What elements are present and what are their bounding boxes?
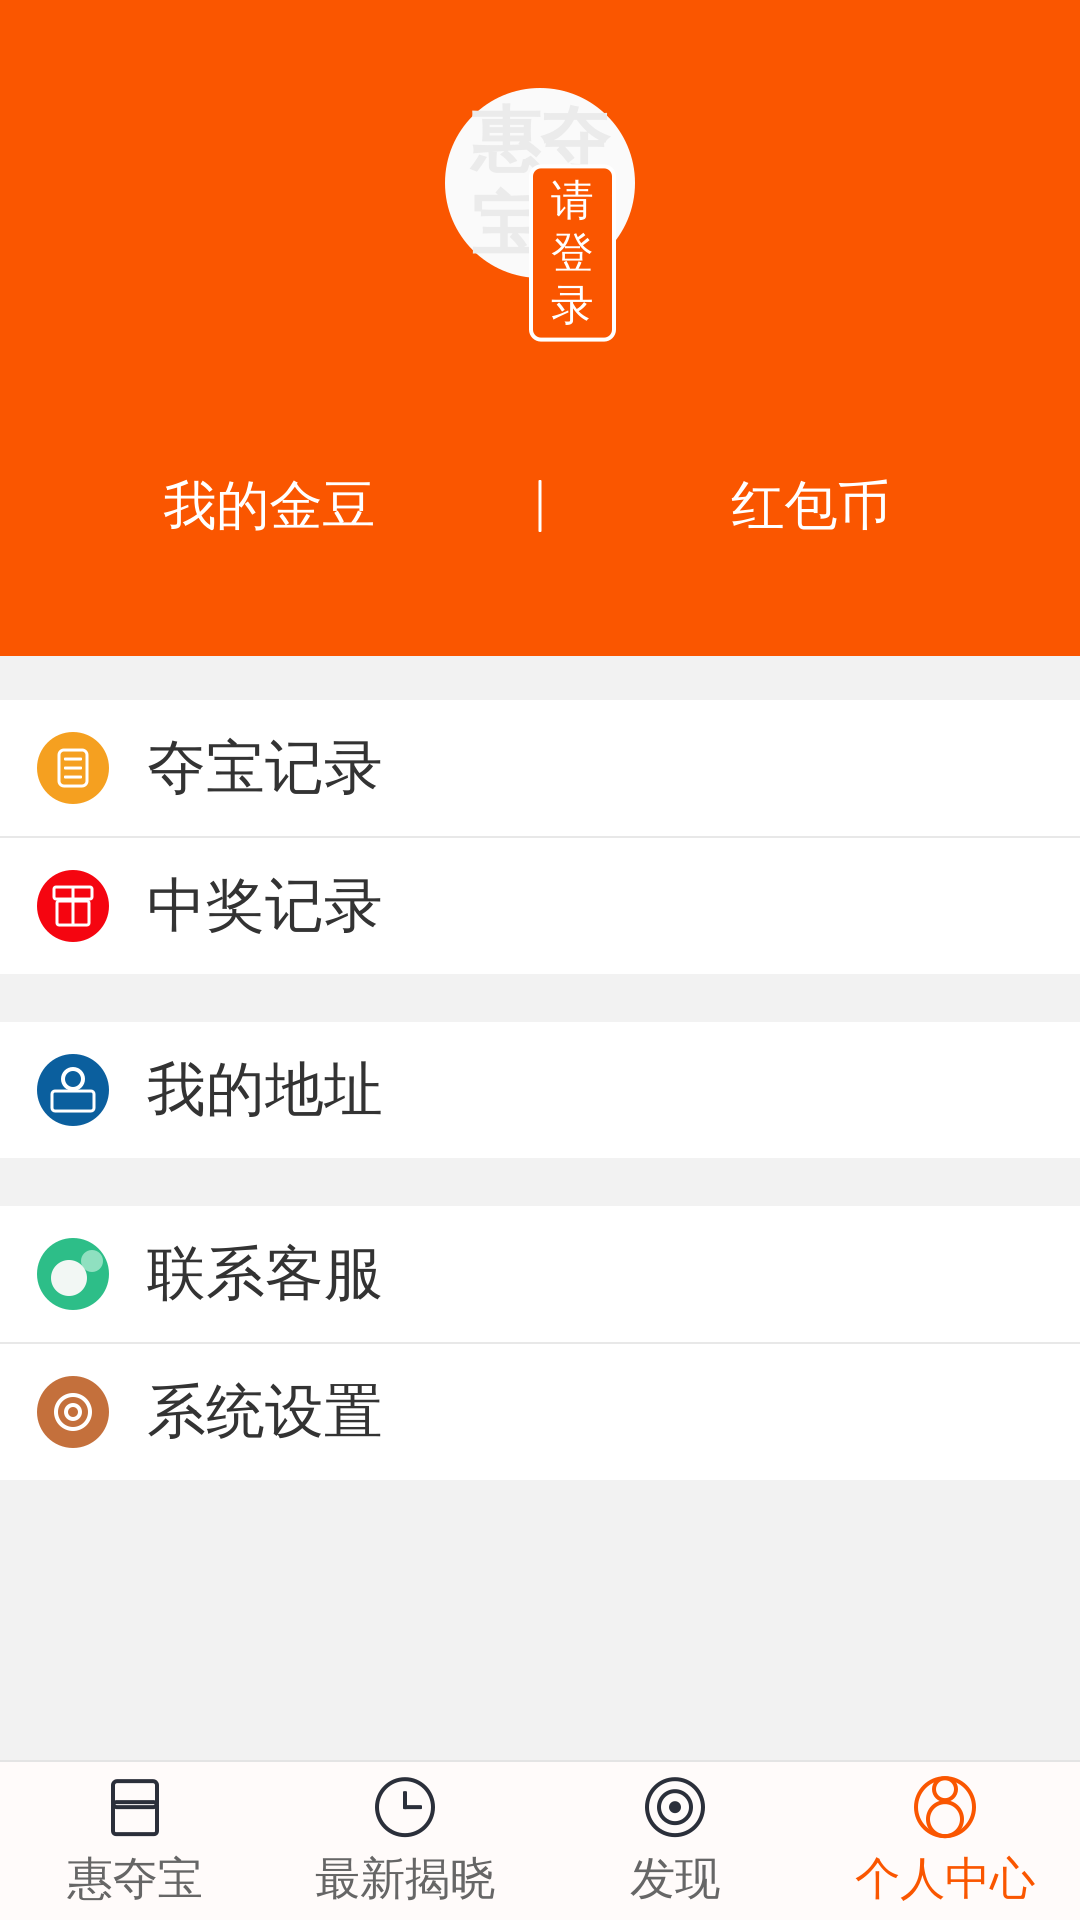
- staticText: 惠夺宝: [471, 98, 609, 268]
- staticText: 夺宝记录: [147, 732, 383, 804]
- staticText: 请登录: [551, 174, 594, 332]
- button[interactable]: 惠夺宝: [0, 1762, 270, 1920]
- staticText: 红包币: [731, 473, 890, 539]
- staticText: 系统设置: [147, 1376, 383, 1448]
- staticText: 最新揭晓: [315, 1851, 495, 1907]
- button[interactable]: 发现: [540, 1762, 810, 1920]
- staticText: 中奖记录: [147, 870, 383, 942]
- button[interactable]: 系统设置: [0, 1344, 1080, 1480]
- button[interactable]: 我的金豆: [0, 473, 538, 539]
- staticText: 发现: [630, 1851, 720, 1907]
- staticText: 我的地址: [147, 1054, 383, 1126]
- staticText: 惠夺宝: [67, 1851, 202, 1907]
- staticText: 个人中心: [855, 1851, 1035, 1907]
- staticText: 我的金豆: [163, 473, 375, 539]
- button[interactable]: 个人中心: [810, 1762, 1080, 1920]
- button[interactable]: 夺宝记录: [0, 700, 1080, 836]
- button[interactable]: 联系客服: [0, 1206, 1080, 1342]
- button[interactable]: 最新揭晓: [270, 1762, 540, 1920]
- button[interactable]: 中奖记录: [0, 838, 1080, 974]
- button[interactable]: 红包币: [541, 473, 1080, 539]
- button[interactable]: 请登录: [531, 166, 614, 340]
- button[interactable]: 我的地址: [0, 1022, 1080, 1158]
- staticText: 联系客服: [147, 1238, 383, 1310]
